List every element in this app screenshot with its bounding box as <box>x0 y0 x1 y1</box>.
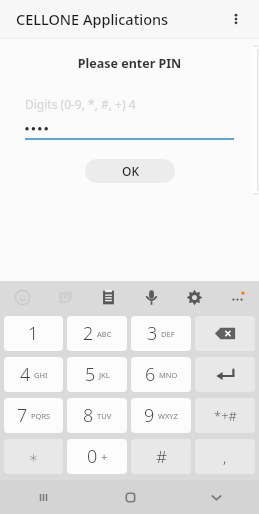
staticText: 0 <box>87 444 98 469</box>
staticText: 4 <box>20 362 31 387</box>
staticText: 5 <box>85 362 96 387</box>
staticText: JKL <box>99 370 110 380</box>
staticText: ∗ <box>28 447 39 467</box>
button[interactable]: More options <box>219 2 253 36</box>
button[interactable]: , <box>195 439 255 474</box>
button[interactable]: More <box>216 281 259 313</box>
staticText: GHI <box>34 370 48 380</box>
staticText: + <box>101 449 108 464</box>
staticText: ABC <box>97 329 112 339</box>
button[interactable] <box>25 120 234 134</box>
button[interactable]: 0 <box>67 439 127 474</box>
button[interactable]: Home <box>87 480 173 514</box>
staticText: 3 <box>147 321 158 346</box>
staticText: TUV <box>97 411 112 421</box>
button[interactable]: 8 <box>67 398 127 433</box>
staticText: MNO <box>159 370 178 380</box>
staticText: 8 <box>83 403 94 428</box>
button[interactable]: Backspace <box>195 316 255 351</box>
staticText: 6 <box>145 362 156 387</box>
staticText: 9 <box>144 403 155 428</box>
button[interactable]: Recents <box>0 480 87 514</box>
button[interactable]: Emoji <box>0 281 44 313</box>
staticText: # <box>156 445 167 468</box>
staticText: OK <box>122 163 139 179</box>
button[interactable]: Clipboard <box>87 281 130 313</box>
staticText: CELLONE Applications <box>16 9 169 29</box>
staticText: 2 <box>83 321 94 346</box>
button[interactable]: 6 <box>131 357 191 392</box>
staticText: *+# <box>214 407 237 425</box>
button[interactable]: 5 <box>67 357 127 392</box>
staticText: , <box>223 447 227 467</box>
staticText: WXYZ <box>158 411 178 421</box>
button[interactable]: Voice input <box>130 281 173 313</box>
button[interactable]: 1 <box>4 316 63 351</box>
button[interactable]: 3 <box>131 316 191 351</box>
staticText: 7 <box>17 403 28 428</box>
button[interactable]: 7 <box>4 398 63 433</box>
button[interactable]: 9 <box>131 398 191 433</box>
button[interactable]: Keyboard settings <box>173 281 216 313</box>
staticText: DEF <box>161 329 175 339</box>
staticText: Digits (0-9, *, #, +) 4 <box>25 96 136 112</box>
button[interactable]: *+# <box>195 398 255 433</box>
staticText: PQRS <box>31 411 51 421</box>
staticText: 1 <box>28 321 39 346</box>
button[interactable]: Enter <box>195 357 255 392</box>
button[interactable]: 4 <box>4 357 63 392</box>
button[interactable]: # <box>131 439 191 474</box>
button[interactable]: Hide keyboard <box>173 480 259 514</box>
button[interactable]: ∗ <box>4 439 63 474</box>
button[interactable]: 2 <box>67 316 127 351</box>
button[interactable]: OK <box>85 159 175 183</box>
staticText: Please enter PIN <box>0 55 259 72</box>
